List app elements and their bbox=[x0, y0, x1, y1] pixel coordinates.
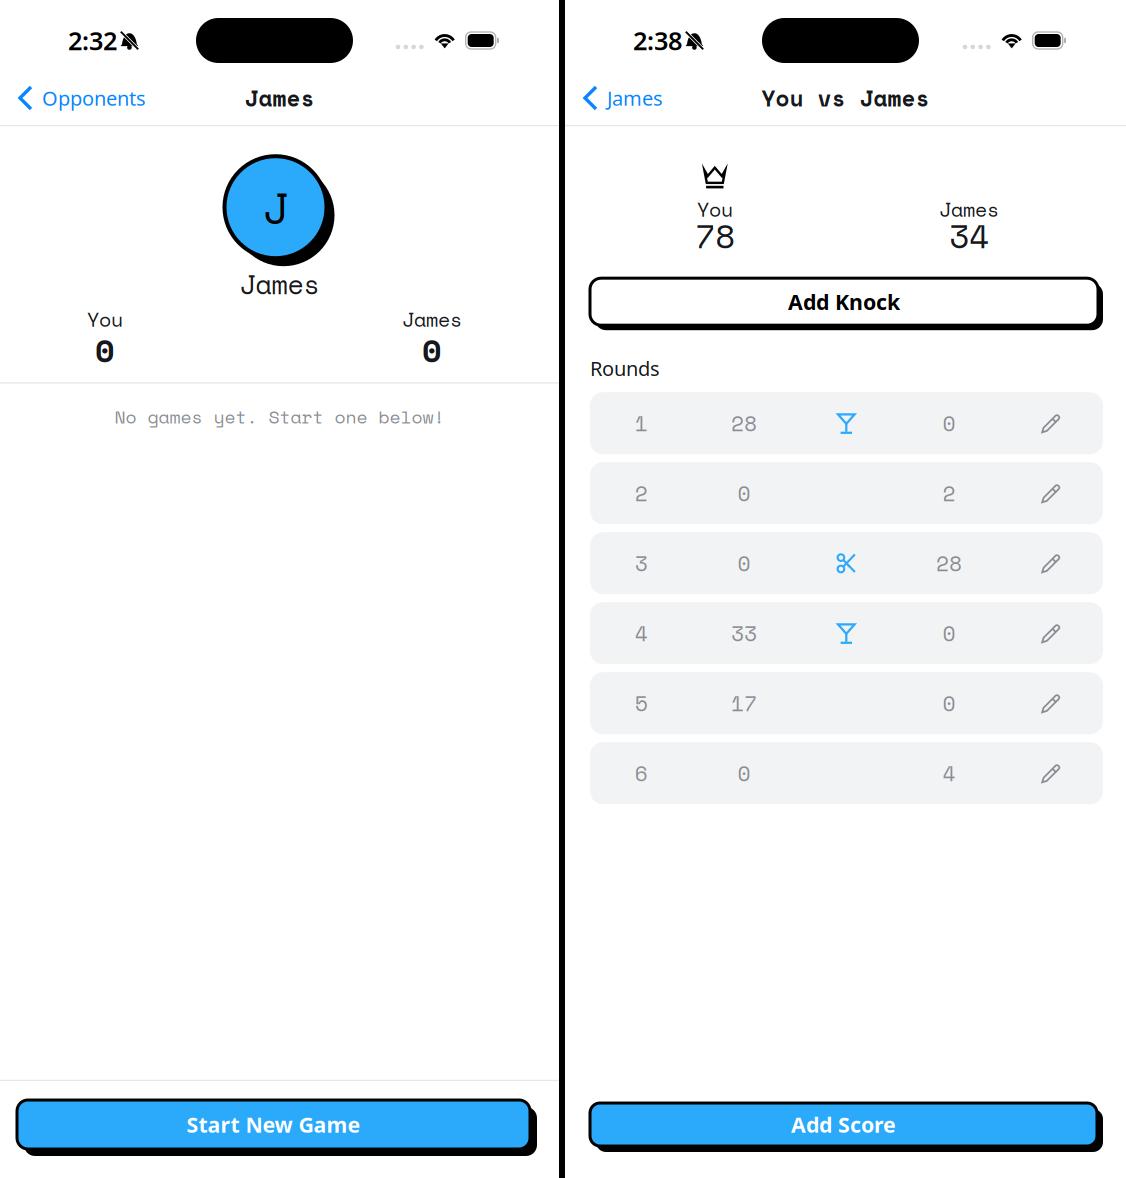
staticText: Start New Game bbox=[186, 1110, 360, 1139]
staticText: You vs James bbox=[761, 81, 929, 115]
staticText: You bbox=[697, 194, 733, 224]
staticText: 28 bbox=[936, 547, 962, 579]
staticText: 3 bbox=[635, 547, 648, 579]
staticText: James bbox=[939, 194, 999, 224]
staticText: 4 bbox=[635, 617, 648, 649]
button[interactable]: Start New Game bbox=[17, 1100, 537, 1156]
staticText: No games yet. Start one below! bbox=[114, 403, 444, 430]
button[interactable]: 3 bbox=[590, 532, 1103, 594]
staticText: Rounds bbox=[590, 355, 660, 381]
button[interactable]: Add Knock bbox=[590, 278, 1103, 330]
staticText: 1 bbox=[635, 407, 648, 439]
button[interactable]: Add Score bbox=[590, 1103, 1103, 1152]
staticText: James bbox=[239, 264, 319, 304]
staticText: 0 bbox=[95, 326, 115, 374]
staticText: James bbox=[607, 85, 663, 111]
staticText: 2:32 bbox=[68, 24, 117, 57]
staticText: Opponents bbox=[42, 85, 146, 111]
staticText: 0 bbox=[737, 477, 750, 509]
staticText: 0 bbox=[943, 687, 956, 719]
button[interactable]: James bbox=[568, 78, 676, 118]
staticText: 33 bbox=[731, 617, 757, 649]
staticText: 5 bbox=[635, 687, 648, 719]
staticText: 0 bbox=[737, 757, 750, 789]
staticText: 34 bbox=[949, 211, 989, 260]
button[interactable]: Opponents bbox=[3, 78, 159, 118]
button[interactable]: 2 bbox=[590, 462, 1103, 524]
staticText: 6 bbox=[635, 757, 648, 789]
staticText: James bbox=[402, 304, 462, 334]
button[interactable]: 5 bbox=[590, 672, 1103, 734]
staticText: You bbox=[87, 304, 123, 334]
staticText: 0 bbox=[943, 617, 956, 649]
button[interactable]: 4 bbox=[590, 602, 1103, 664]
staticText: Add Knock bbox=[788, 287, 900, 316]
staticText: 0 bbox=[943, 407, 956, 439]
staticText: 0 bbox=[737, 547, 750, 579]
staticText: 2 bbox=[635, 477, 648, 509]
staticText: 17 bbox=[731, 687, 757, 719]
staticText: 0 bbox=[422, 326, 442, 374]
button[interactable]: 6 bbox=[590, 742, 1103, 804]
staticText: 28 bbox=[731, 407, 757, 439]
staticText: 2 bbox=[943, 477, 956, 509]
staticText: 4 bbox=[943, 757, 956, 789]
staticText: J bbox=[262, 176, 288, 239]
staticText: James bbox=[244, 81, 314, 115]
button[interactable]: 1 bbox=[590, 392, 1103, 454]
staticText: Add Score bbox=[791, 1110, 896, 1139]
staticText: 78 bbox=[695, 211, 735, 260]
staticText: 2:38 bbox=[633, 24, 682, 57]
